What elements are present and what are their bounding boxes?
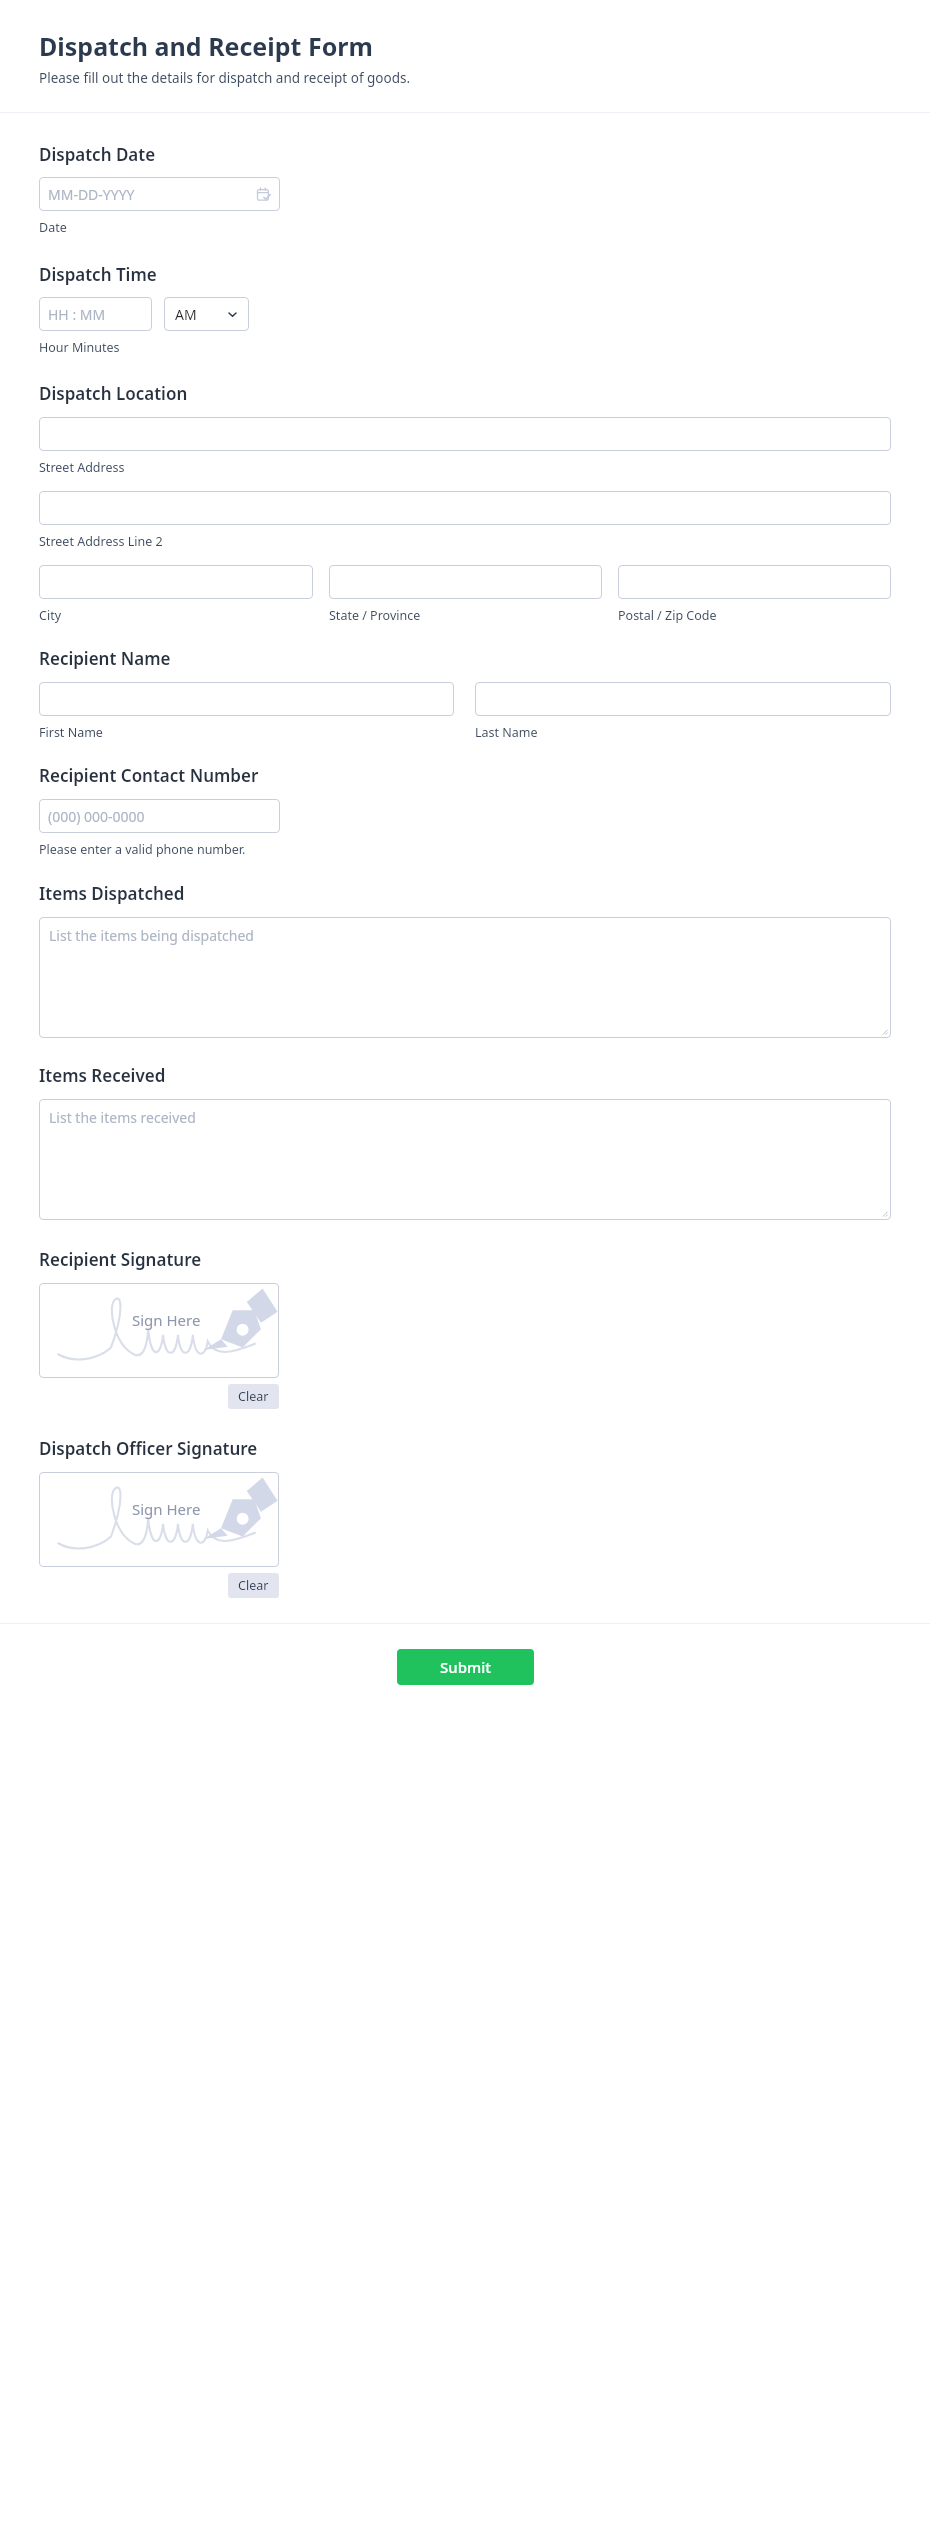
button[interactable] xyxy=(618,565,891,599)
staticText: Recipient Name xyxy=(39,647,171,670)
button[interactable]: Submit xyxy=(397,1649,534,1685)
button[interactable] xyxy=(39,491,891,525)
button[interactable] xyxy=(475,682,891,716)
staticText: Hour Minutes xyxy=(39,339,120,356)
staticText: Clear xyxy=(238,1388,269,1405)
button[interactable]: Sign Here xyxy=(39,1472,279,1567)
staticText: Clear xyxy=(238,1577,269,1594)
button[interactable]: List the items being dispatched xyxy=(39,917,891,1038)
button[interactable]: (000) 000-0000 xyxy=(39,799,280,833)
staticText: List the items received xyxy=(49,1108,196,1127)
button[interactable]: Sign Here xyxy=(39,1283,279,1378)
button[interactable]: HH : MM xyxy=(39,297,152,331)
button[interactable]: Clear xyxy=(228,1384,279,1409)
staticText: AM xyxy=(175,305,197,324)
staticText: Dispatch and Receipt Form xyxy=(39,29,373,63)
staticText: Recipient Contact Number xyxy=(39,764,259,787)
staticText: State / Province xyxy=(329,607,421,624)
staticText: List the items being dispatched xyxy=(49,926,254,945)
staticText: Date xyxy=(39,219,67,236)
button[interactable] xyxy=(39,565,313,599)
staticText: Recipient Signature xyxy=(39,1248,202,1271)
staticText: Dispatch Officer Signature xyxy=(39,1437,258,1460)
staticText: MM-DD-YYYY xyxy=(48,185,135,204)
staticText: Please fill out the details for dispatch… xyxy=(39,69,411,87)
staticText: Please enter a valid phone number. xyxy=(39,841,246,858)
button[interactable] xyxy=(39,682,454,716)
button[interactable]: List the items received xyxy=(39,1099,891,1220)
button[interactable]: Clear xyxy=(228,1573,279,1598)
staticText: Street Address xyxy=(39,459,125,476)
staticText: Items Received xyxy=(39,1064,166,1087)
staticText: Street Address Line 2 xyxy=(39,533,163,550)
button[interactable] xyxy=(329,565,602,599)
staticText: Dispatch Time xyxy=(39,263,157,286)
staticText: Sign Here xyxy=(132,1310,201,1330)
staticText: Dispatch Date xyxy=(39,143,156,166)
staticText: First Name xyxy=(39,724,103,741)
staticText: Postal / Zip Code xyxy=(618,607,717,624)
button[interactable] xyxy=(39,417,891,451)
staticText: (000) 000-0000 xyxy=(48,807,145,826)
staticText: Sign Here xyxy=(132,1499,201,1519)
staticText: Dispatch Location xyxy=(39,382,188,405)
staticText: Submit xyxy=(440,1657,491,1677)
staticText: Items Dispatched xyxy=(39,882,185,905)
staticText: City xyxy=(39,607,62,624)
button[interactable]: MM-DD-YYYY xyxy=(39,177,280,211)
staticText: Last Name xyxy=(475,724,538,741)
button[interactable]: AM xyxy=(164,297,249,331)
staticText: HH : MM xyxy=(48,305,106,324)
